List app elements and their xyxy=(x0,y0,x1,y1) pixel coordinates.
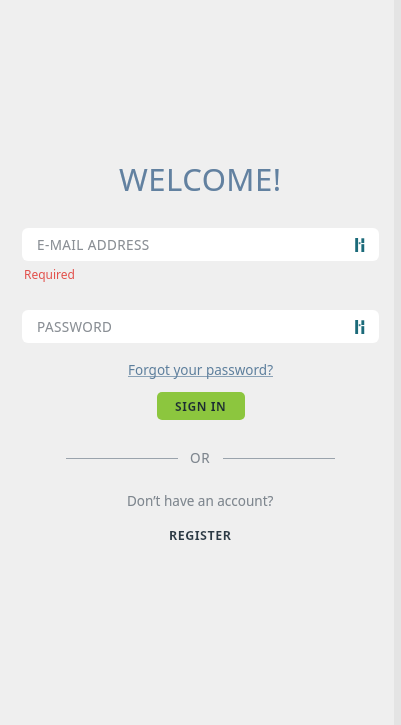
staticText: REGISTER xyxy=(169,527,232,544)
staticText: Forgot your password? xyxy=(128,361,274,379)
other: Input assist xyxy=(351,318,369,336)
staticText: Don’t have an account? xyxy=(127,492,274,510)
staticText: E-MAIL ADDRESS xyxy=(37,236,150,254)
other: Input assist xyxy=(351,236,369,254)
button[interactable]: E-MAIL ADDRESS xyxy=(22,228,379,261)
staticText: PASSWORD xyxy=(37,318,113,336)
button[interactable]: PASSWORD xyxy=(22,310,379,343)
button[interactable]: Forgot your password? xyxy=(124,359,278,381)
button[interactable]: SIGN IN xyxy=(157,392,245,420)
staticText: WELCOME! xyxy=(119,158,282,200)
staticText: Required xyxy=(24,266,75,282)
staticText: OR xyxy=(190,449,211,467)
staticText: SIGN IN xyxy=(175,398,227,414)
button[interactable]: REGISTER xyxy=(161,524,240,547)
